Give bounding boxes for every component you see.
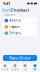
- button[interactable]: Me: [30, 63, 40, 72]
- button[interactable]: Payment: [3, 24, 37, 30]
- button[interactable]: Delivery: [3, 30, 37, 36]
- button[interactable]: Address: [3, 17, 37, 23]
- button[interactable]: Home: [0, 63, 10, 72]
- staticText: Place Order: [9, 55, 31, 61]
- button[interactable]: Place Order: [3, 55, 37, 61]
- staticText: >: [33, 19, 35, 22]
- button[interactable]: Search: [10, 63, 20, 72]
- staticText: Payment: [9, 25, 20, 29]
- staticText: Home: [1, 68, 9, 71]
- staticText: >: [33, 25, 35, 29]
- staticText: Cart: [22, 68, 27, 71]
- staticText: Address: [9, 19, 20, 22]
- staticText: Back: [2, 7, 11, 13]
- staticText: 9:41: [3, 1, 10, 6]
- staticText: Me: [33, 68, 37, 71]
- staticText: Search: [11, 68, 19, 71]
- staticText: DELIVERY: [4, 13, 16, 16]
- staticText: Delivery: [9, 31, 20, 35]
- staticText: >: [33, 31, 35, 35]
- button[interactable]: Cart: [20, 63, 30, 72]
- button[interactable]: Back: [0, 7, 13, 13]
- staticText: Checkout: [10, 7, 29, 13]
